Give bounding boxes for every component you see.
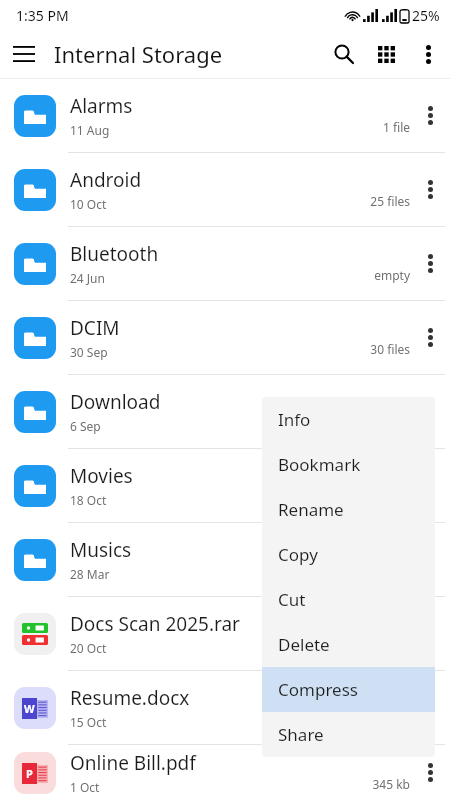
button[interactable]: Item options	[410, 227, 450, 300]
staticText: 20 Oct	[70, 640, 107, 656]
staticText: Compress	[278, 678, 358, 701]
staticText: 1 file	[382, 119, 410, 135]
staticText: Alarms	[70, 93, 133, 119]
button[interactable]: Download	[0, 375, 450, 448]
staticText: Share	[278, 723, 324, 746]
staticText: 18 Oct	[70, 492, 107, 508]
staticText: Delete	[278, 633, 330, 656]
button[interactable]: Item options	[410, 523, 450, 596]
staticText: 1 Oct	[70, 779, 100, 795]
staticText: DCIM	[70, 315, 120, 341]
button[interactable]: Item options	[410, 79, 450, 152]
button[interactable]: Share	[262, 712, 435, 757]
staticText: 1:35 PM	[16, 6, 69, 25]
staticText: P	[26, 766, 33, 781]
button[interactable]: Info	[262, 397, 435, 442]
button[interactable]: Delete	[262, 622, 435, 667]
button[interactable]: Rename	[262, 487, 435, 532]
button[interactable]: Movies	[0, 449, 450, 522]
button[interactable]: Item options	[410, 301, 450, 374]
staticText: Internal Storage	[54, 39, 223, 69]
staticText: 15 Oct	[70, 714, 107, 730]
staticText: Resume.docx	[70, 685, 190, 711]
staticText: 30 files	[370, 341, 410, 357]
staticText: 24 Jun	[70, 270, 105, 286]
button[interactable]: Bluetooth	[0, 227, 450, 300]
button[interactable]: Item options	[410, 597, 450, 670]
button[interactable]: Item options	[410, 153, 450, 226]
staticText: Online Bill.pdf	[70, 750, 196, 776]
staticText: W	[24, 701, 35, 716]
staticText: 345 kb	[372, 776, 410, 792]
button[interactable]: Compress	[262, 667, 435, 712]
button[interactable]: Menu	[0, 30, 48, 78]
staticText: Bluetooth	[70, 241, 159, 267]
staticText: 11 Aug	[70, 122, 110, 138]
button[interactable]: Cut	[262, 577, 435, 622]
staticText: 10 Oct	[70, 196, 107, 212]
button[interactable]: P	[0, 745, 450, 800]
staticText: Musics	[70, 537, 132, 563]
staticText: Movies	[70, 463, 133, 489]
button[interactable]: DCIM	[0, 301, 450, 374]
staticText: 25 files	[370, 193, 410, 209]
button[interactable]: Grid view	[366, 34, 406, 74]
staticText: Cut	[278, 588, 306, 611]
button[interactable]: W	[0, 671, 450, 744]
staticText: Copy	[278, 543, 318, 566]
button[interactable]: Search	[322, 32, 366, 76]
button[interactable]: Item options	[410, 745, 450, 800]
button[interactable]: Copy	[262, 532, 435, 577]
staticText: Rename	[278, 498, 344, 521]
button[interactable]: Item options	[410, 375, 450, 448]
staticText: empty	[374, 267, 410, 283]
staticText: Download	[70, 389, 161, 415]
button[interactable]: More options	[406, 32, 450, 76]
button[interactable]: Item options	[410, 671, 450, 744]
staticText: Docs Scan 2025.rar	[70, 611, 240, 637]
button[interactable]: Alarms	[0, 79, 450, 152]
button[interactable]: Item options	[410, 449, 450, 522]
staticText: Bookmark	[278, 453, 361, 476]
staticText: 28 Mar	[70, 566, 110, 582]
staticText: Android	[70, 167, 142, 193]
staticText: Info	[278, 408, 311, 431]
button[interactable]: Bookmark	[262, 442, 435, 487]
staticText: 30 Sep	[70, 344, 108, 360]
button[interactable]: Musics	[0, 523, 450, 596]
staticText: 25%	[412, 6, 440, 25]
staticText: 6 Sep	[70, 418, 101, 434]
button[interactable]: Docs Scan 2025.rar	[0, 597, 450, 670]
button[interactable]: Android	[0, 153, 450, 226]
